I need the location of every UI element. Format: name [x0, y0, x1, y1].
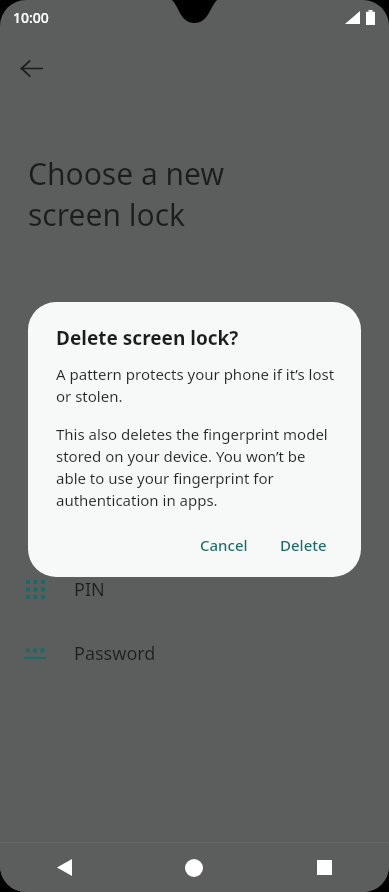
button[interactable]: Navigate up: [10, 47, 52, 89]
staticText: PIN: [74, 577, 105, 602]
staticText: Cancel: [200, 535, 248, 555]
staticText: Delete: [280, 535, 327, 555]
staticText: Delete screen lock?: [56, 325, 239, 351]
button[interactable]: Home: [129, 843, 259, 892]
button[interactable]: PIN: [0, 566, 389, 612]
button[interactable]: Delete: [268, 527, 339, 563]
staticText: A pattern protects your phone if it’s lo…: [56, 364, 339, 407]
staticText: Password: [74, 641, 156, 666]
staticText: 10:00: [13, 8, 49, 27]
staticText: Choose a new screen lock: [28, 153, 389, 235]
button[interactable]: Cancel: [188, 527, 260, 563]
staticText: This also deletes the fingerprint model …: [56, 424, 339, 511]
button[interactable]: Recent apps: [259, 843, 389, 892]
button[interactable]: Password: [0, 630, 389, 676]
button[interactable]: Back: [0, 843, 129, 892]
